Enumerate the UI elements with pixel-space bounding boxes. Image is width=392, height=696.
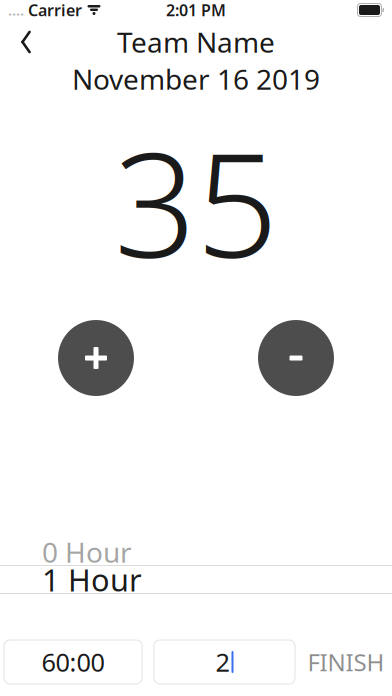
- button[interactable]: Back: [0, 20, 52, 64]
- button[interactable]: FINISH: [303, 640, 389, 684]
- staticText: November 16 2019: [72, 60, 320, 98]
- staticText: 2: [215, 645, 229, 679]
- staticText: FINISH: [307, 646, 384, 678]
- staticText: 1 Hour: [42, 559, 142, 600]
- button[interactable]: Increase: [58, 320, 134, 396]
- staticText: 60:00: [41, 645, 104, 679]
- button[interactable]: Decrease: [258, 320, 334, 396]
- staticText: 35: [114, 106, 278, 298]
- staticText: Carrier: [28, 0, 82, 21]
- staticText: ....: [8, 0, 24, 20]
- staticText: 2:01 PM: [166, 0, 226, 21]
- staticText: 0 Hour: [42, 533, 132, 571]
- staticText: Team Name: [117, 23, 275, 61]
- button[interactable]: 60:00: [4, 640, 142, 684]
- button[interactable]: 2: [154, 640, 295, 684]
